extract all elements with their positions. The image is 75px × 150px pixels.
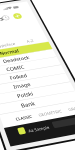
button[interactable] — [0, 0, 75, 150]
